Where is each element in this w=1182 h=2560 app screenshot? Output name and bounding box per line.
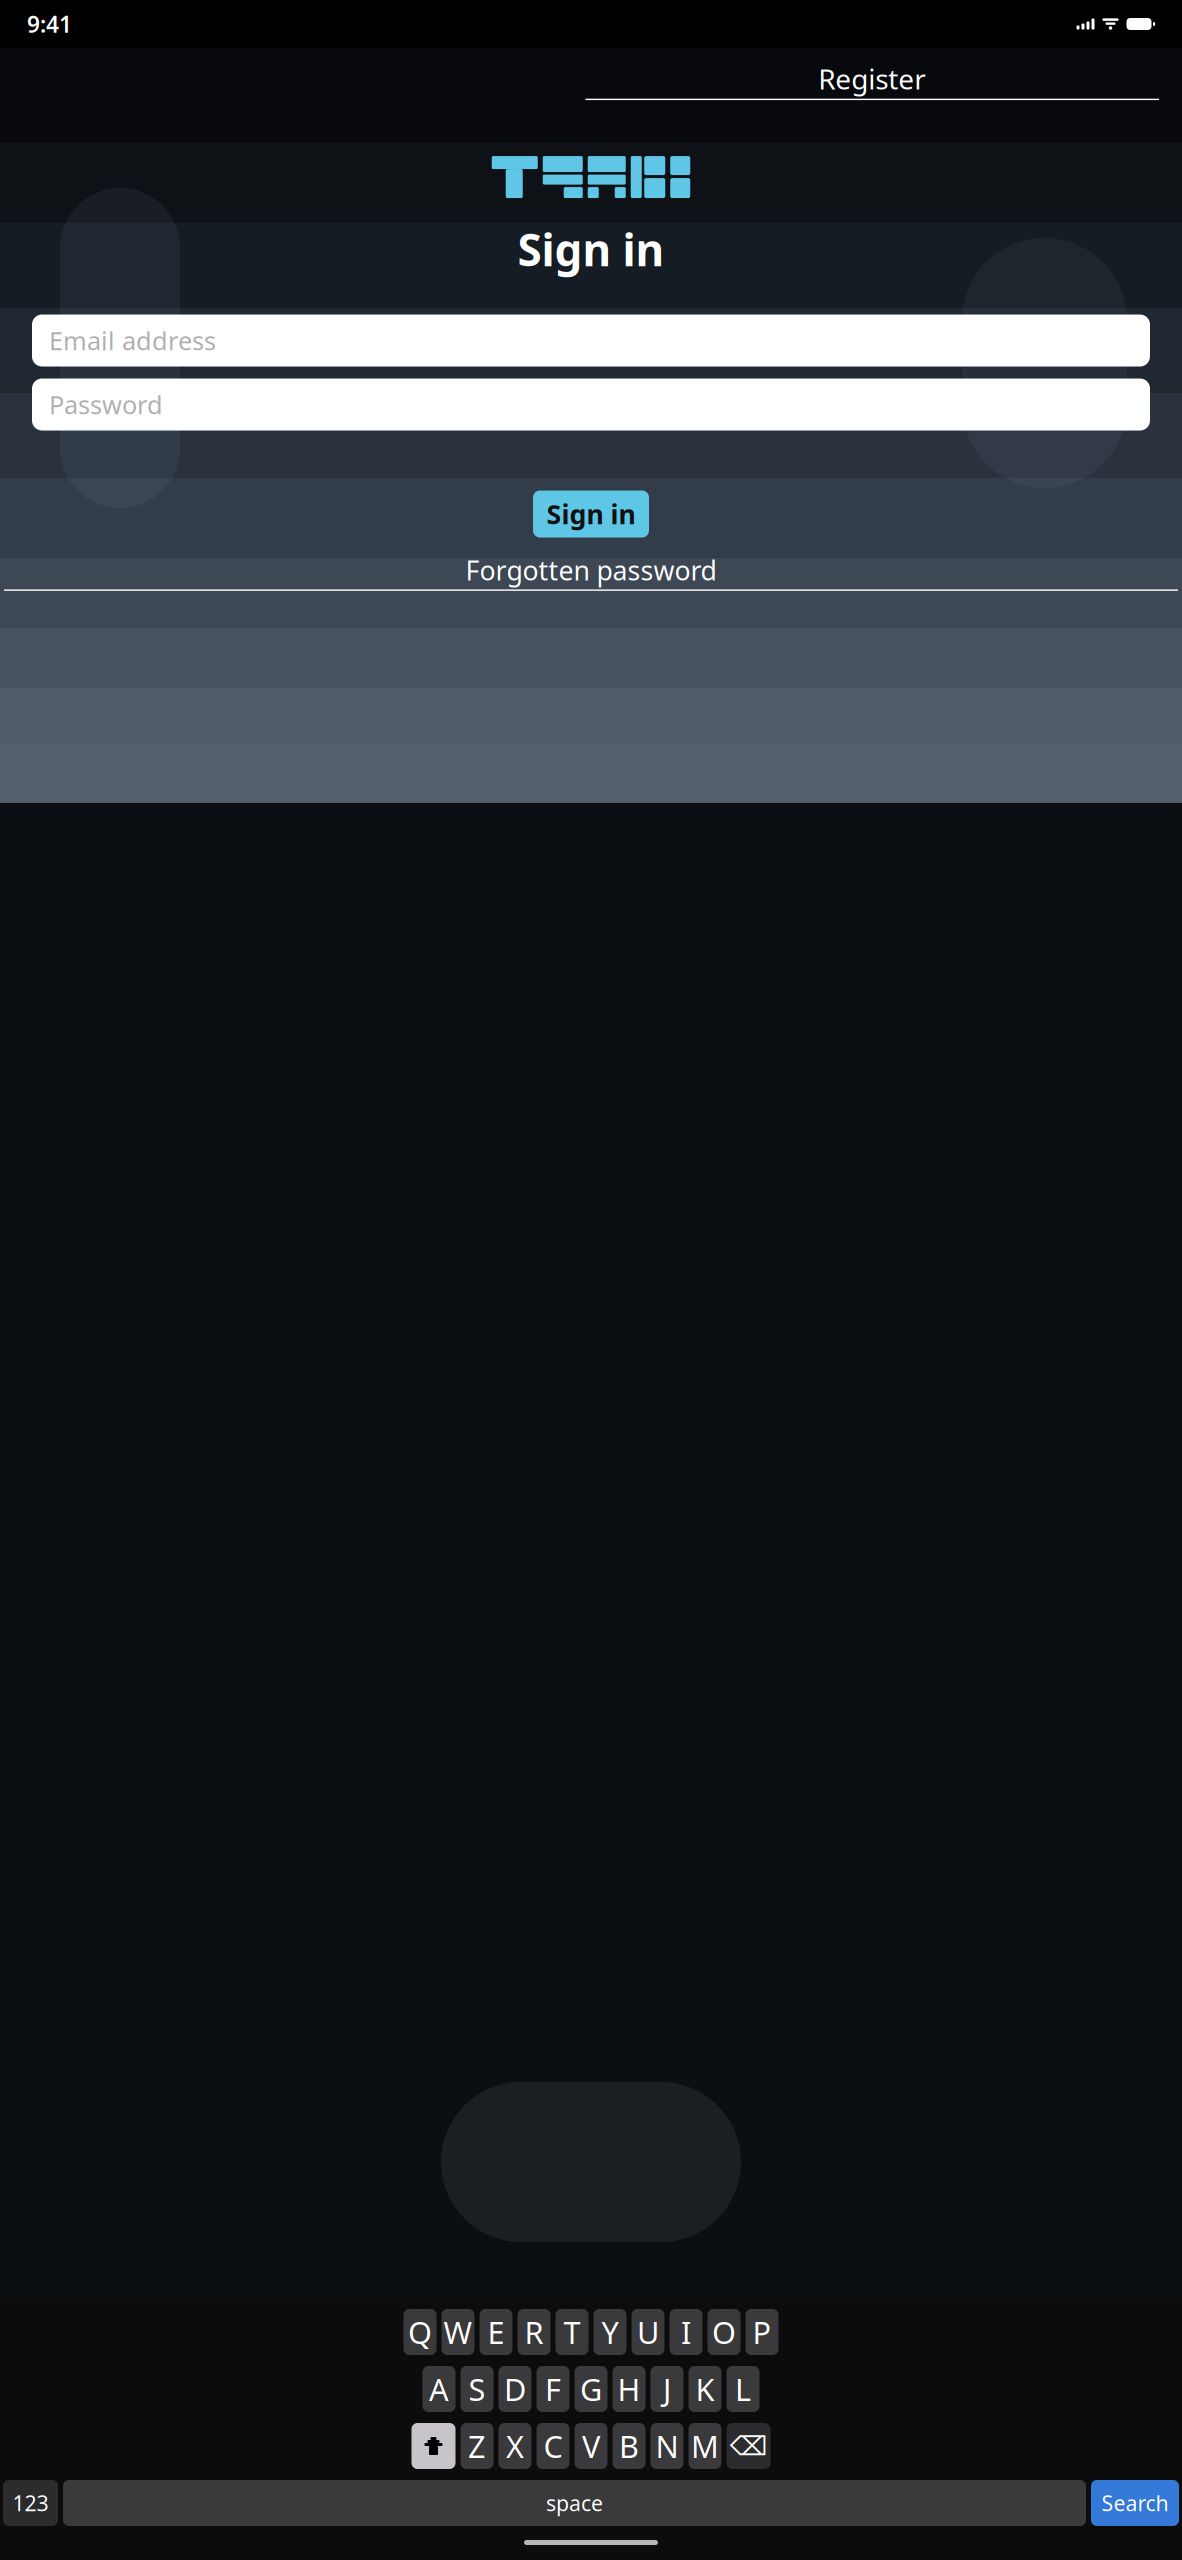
staticText: Search [1101, 2489, 1168, 2517]
button[interactable]: I [669, 2309, 702, 2355]
staticText: Forgotten password [465, 552, 716, 588]
button[interactable]: Register [581, 56, 1163, 104]
staticText: 123 [12, 2489, 48, 2517]
button[interactable]: C [536, 2423, 569, 2469]
button[interactable]: Y [593, 2309, 626, 2355]
staticText: M [691, 2426, 719, 2466]
button[interactable]: T [555, 2309, 588, 2355]
staticText: W [443, 2312, 472, 2352]
staticText: H [617, 2369, 640, 2409]
staticText: Q [408, 2312, 432, 2352]
button[interactable]: D [498, 2366, 531, 2412]
button[interactable]: W [441, 2309, 474, 2355]
button[interactable]: B [612, 2423, 645, 2469]
staticText: Password [49, 388, 163, 421]
button[interactable]: S [460, 2366, 493, 2412]
button[interactable]: P [745, 2309, 778, 2355]
staticText: K [695, 2369, 714, 2409]
staticText: Sign in [546, 496, 635, 532]
staticText: D [504, 2369, 526, 2409]
button[interactable]: Backspace [726, 2423, 770, 2469]
staticText: ⌫ [729, 2431, 767, 2461]
button[interactable]: R [517, 2309, 550, 2355]
staticText: J [663, 2369, 671, 2409]
button[interactable]: H [612, 2366, 645, 2412]
button[interactable]: J [650, 2366, 683, 2412]
button[interactable]: Search [1091, 2480, 1179, 2526]
staticText: N [655, 2426, 678, 2466]
button[interactable]: N [650, 2423, 683, 2469]
button[interactable]: 123 [3, 2480, 58, 2526]
staticText: Y [601, 2312, 618, 2352]
staticText: L [735, 2369, 751, 2409]
button[interactable]: space [63, 2480, 1086, 2526]
staticText: G [580, 2369, 602, 2409]
button[interactable]: Forgotten password [0, 549, 1182, 594]
button[interactable]: Shift [411, 2423, 455, 2469]
button[interactable]: Password [32, 378, 1150, 430]
button[interactable]: F [536, 2366, 569, 2412]
button[interactable]: U [631, 2309, 664, 2355]
staticText: Email address [49, 324, 216, 357]
staticText: B [619, 2426, 639, 2466]
button[interactable]: X [498, 2423, 531, 2469]
staticText: I [681, 2312, 691, 2352]
staticText: R [524, 2312, 543, 2352]
staticText: E [487, 2312, 504, 2352]
staticText: A [429, 2369, 449, 2409]
staticText: Sign in [517, 220, 664, 278]
button[interactable]: A [422, 2366, 455, 2412]
staticText: 9:41 [27, 9, 72, 39]
button[interactable]: M [688, 2423, 721, 2469]
button[interactable]: Q [403, 2309, 436, 2355]
staticText: U [637, 2312, 659, 2352]
staticText: C [543, 2426, 562, 2466]
button[interactable]: E [479, 2309, 512, 2355]
staticText: Z [468, 2426, 486, 2466]
button[interactable]: Sign in [533, 490, 649, 537]
button[interactable]: Email address [32, 314, 1150, 366]
staticText: Register [818, 60, 926, 97]
button[interactable]: L [726, 2366, 759, 2412]
staticText: O [712, 2312, 736, 2352]
staticText: X [506, 2426, 524, 2466]
button[interactable]: K [688, 2366, 721, 2412]
button[interactable]: Z [460, 2423, 493, 2469]
staticText: space [546, 2489, 603, 2517]
staticText: F [545, 2369, 561, 2409]
staticText: V [582, 2426, 600, 2466]
staticText: S [468, 2369, 485, 2409]
staticText: T [563, 2312, 580, 2352]
staticText: P [752, 2312, 771, 2352]
button[interactable]: O [707, 2309, 740, 2355]
button[interactable]: G [574, 2366, 607, 2412]
button[interactable]: V [574, 2423, 607, 2469]
